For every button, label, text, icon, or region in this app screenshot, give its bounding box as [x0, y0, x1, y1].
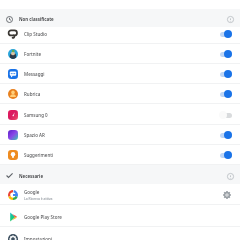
button[interactable]: Toggle — [219, 128, 240, 142]
staticText: Google — [24, 189, 40, 195]
button[interactable]: Toggle — [219, 47, 240, 61]
staticText: Google Play Store — [24, 214, 62, 220]
button[interactable]: Toggle — [219, 87, 240, 101]
button[interactable]: Toggle — [219, 148, 240, 162]
button[interactable]: Toggle — [219, 67, 240, 81]
button[interactable]: Toggle — [219, 108, 240, 122]
button[interactable]: Fortnite — [0, 44, 240, 64]
button[interactable]: Info — [223, 12, 237, 26]
button[interactable]: Necessarie — [0, 166, 240, 185]
button[interactable]: Impostazioni — [0, 228, 240, 240]
button[interactable]: Messaggi — [0, 64, 240, 84]
button[interactable]: Samsung 0 — [0, 105, 240, 125]
staticText: Messaggi — [24, 71, 45, 77]
button[interactable]: Google — [0, 184, 240, 205]
button[interactable]: Toggle — [219, 27, 240, 41]
staticText: Suggerimenti — [24, 152, 54, 158]
button[interactable]: Rubrica — [0, 84, 240, 104]
button[interactable]: Settings — [220, 188, 234, 202]
staticText: La Ricerca è attiva — [24, 196, 53, 201]
button[interactable]: Non classificate — [0, 10, 240, 28]
staticText: Impostazioni — [24, 236, 53, 240]
staticText: Rubrica — [24, 91, 41, 97]
button[interactable]: Google Play Store — [0, 206, 240, 227]
button[interactable]: Suggerimenti — [0, 145, 240, 165]
staticText: Fortnite — [24, 51, 42, 57]
staticText: Clip Studio — [24, 31, 48, 37]
staticText: Necessarie — [19, 173, 44, 179]
staticText: Samsung 0 — [24, 112, 48, 118]
staticText: Spazio AR — [24, 132, 45, 138]
staticText: Non classificate — [19, 16, 54, 22]
button[interactable]: Spazio AR — [0, 125, 240, 145]
button[interactable]: Info — [223, 169, 237, 183]
button[interactable]: Clip Studio — [0, 24, 240, 44]
